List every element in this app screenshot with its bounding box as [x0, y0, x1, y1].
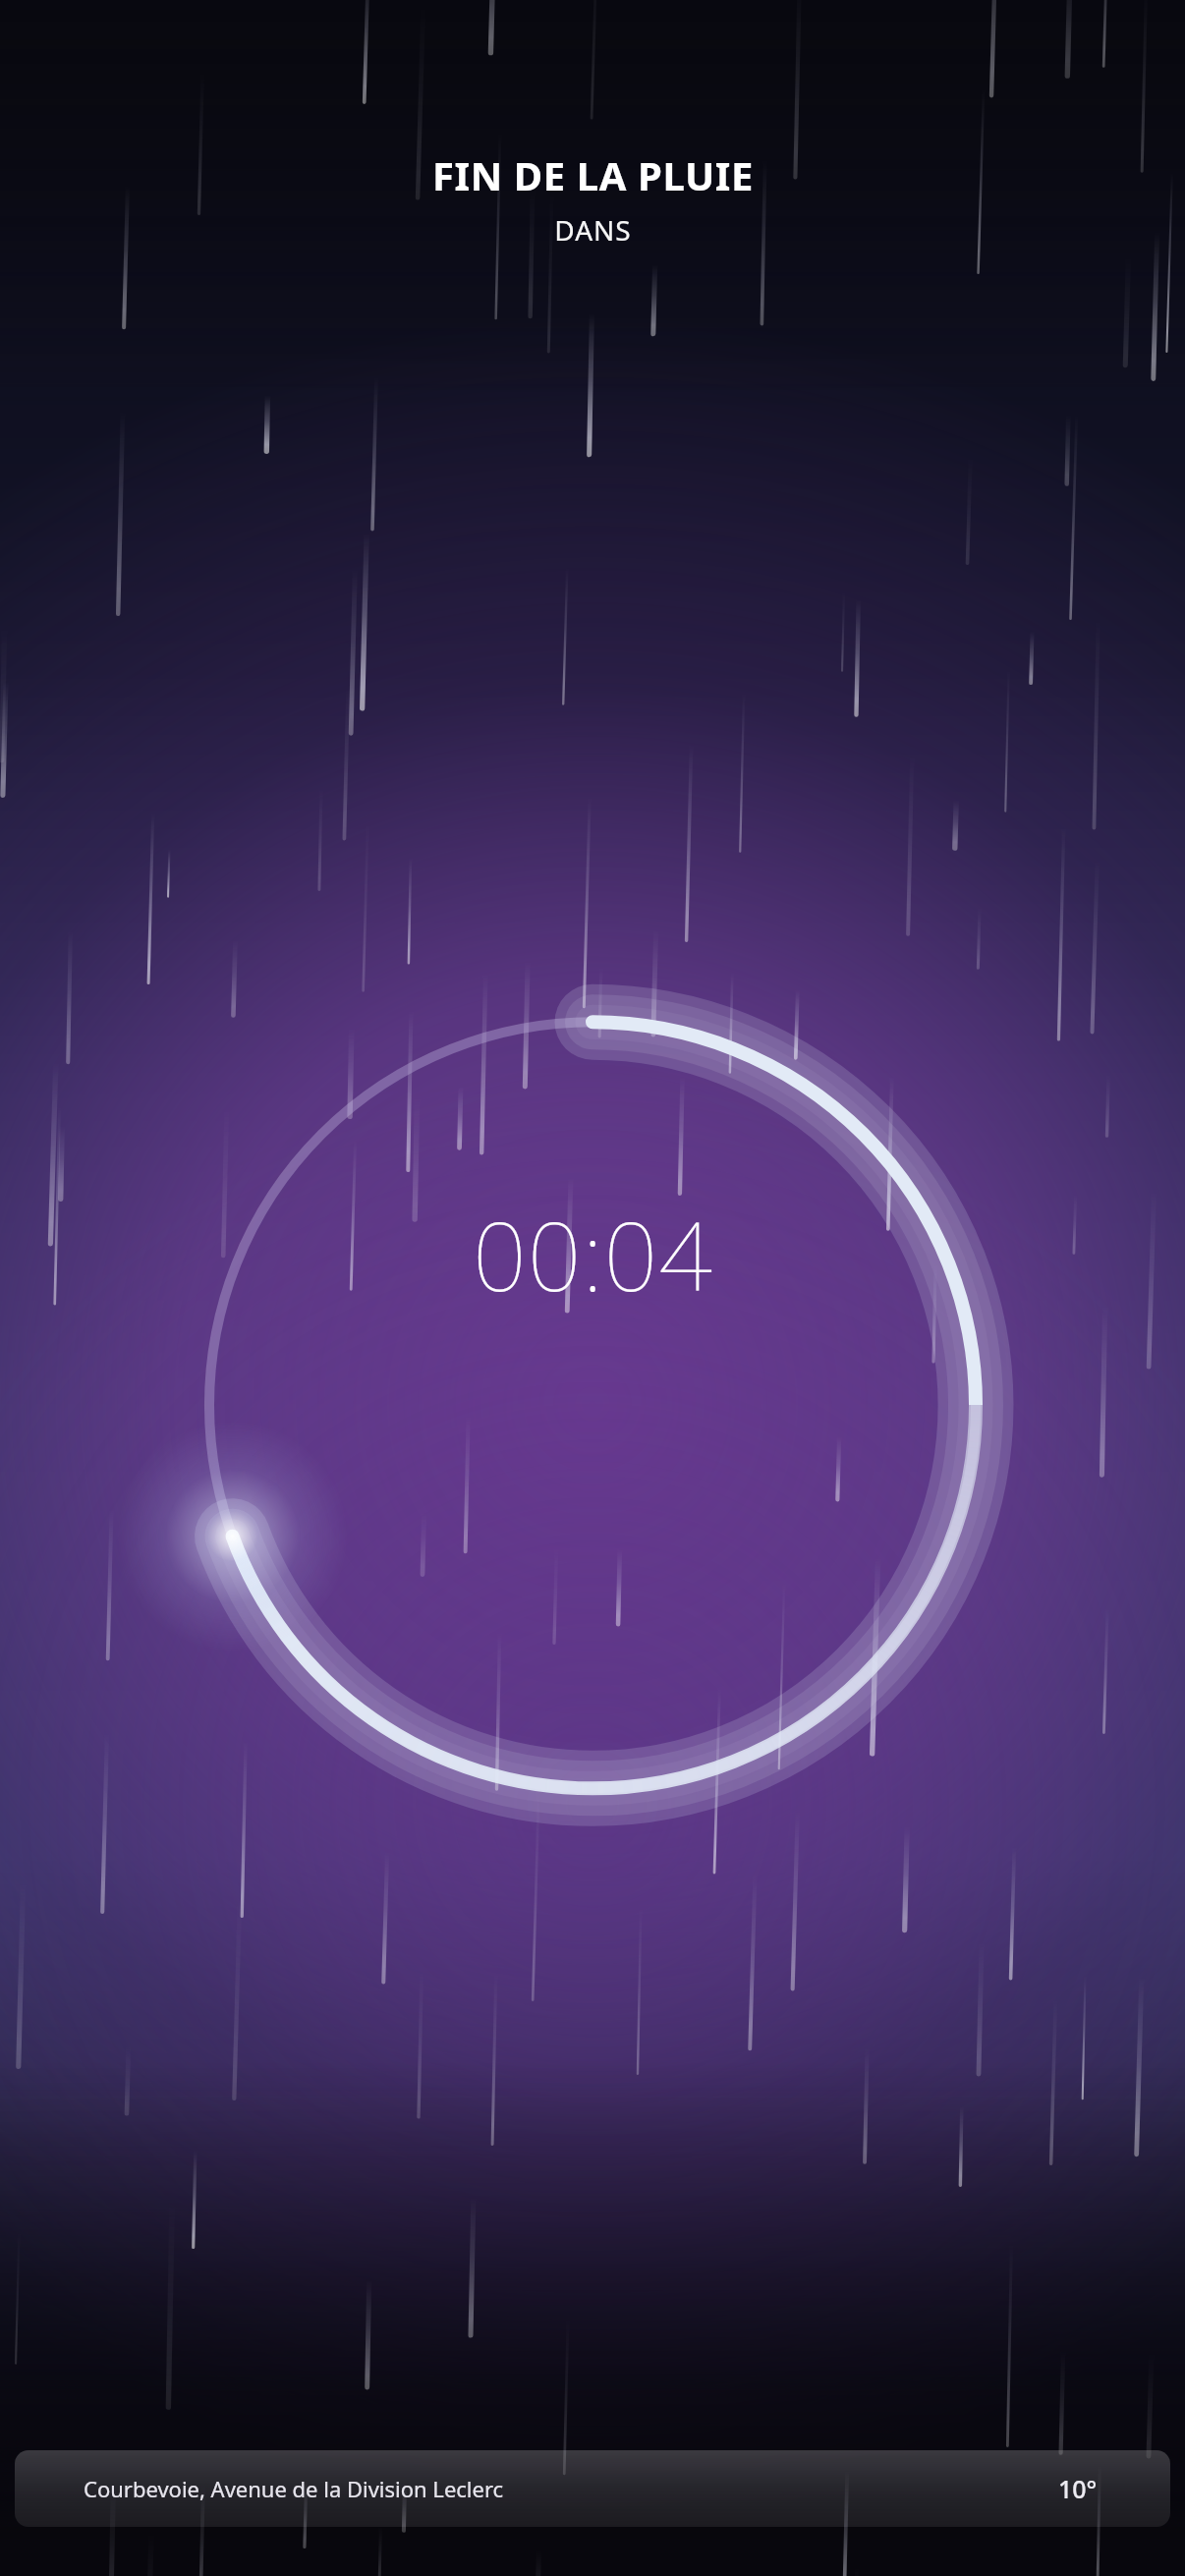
staticText: Courbevoie, Avenue de la Division Lecler…	[84, 2474, 504, 2503]
other: Rain countdown timer	[0, 0, 1185, 2576]
staticText: FIN DE LA PLUIE	[432, 148, 754, 201]
staticText: 00:04	[473, 1190, 713, 1318]
staticText: 10°	[1058, 2472, 1098, 2505]
staticText: DANS	[554, 211, 632, 249]
button[interactable]: Courbevoie, Avenue de la Division Lecler…	[15, 2450, 1170, 2527]
